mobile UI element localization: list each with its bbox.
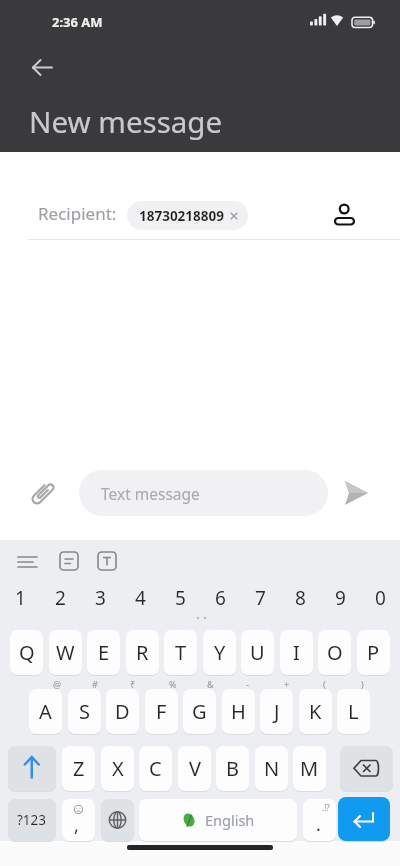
staticText: H xyxy=(231,698,246,725)
staticText: Recipient: xyxy=(38,202,117,225)
button[interactable]: A xyxy=(29,689,62,734)
staticText: G xyxy=(192,698,207,725)
button[interactable]: S xyxy=(68,689,101,734)
button[interactable]: 4 xyxy=(120,585,160,609)
button[interactable] xyxy=(101,799,134,841)
staticText: D xyxy=(115,698,130,725)
button[interactable]: , xyxy=(62,799,95,841)
button[interactable]: Z xyxy=(62,746,95,791)
staticText: X xyxy=(112,755,124,782)
staticText: ?123 xyxy=(17,811,47,829)
staticText: New message xyxy=(29,101,223,141)
staticText: 2:36 AM xyxy=(52,13,103,31)
staticText: 4 xyxy=(135,585,146,609)
staticText: % xyxy=(169,678,177,690)
button[interactable]: Text message xyxy=(79,470,328,516)
button[interactable]: 18730218809 xyxy=(127,201,248,230)
button[interactable]: P xyxy=(357,630,390,675)
staticText: L xyxy=(348,698,359,725)
staticText: 2 xyxy=(55,585,66,609)
button[interactable]: K xyxy=(299,689,332,734)
staticText: , xyxy=(74,813,79,838)
staticText: - xyxy=(246,678,249,690)
staticText: R xyxy=(136,639,149,666)
button[interactable] xyxy=(342,477,372,509)
button[interactable]: W xyxy=(49,630,82,675)
button[interactable]: B xyxy=(216,746,249,791)
button[interactable]: 7 xyxy=(240,585,280,609)
staticText: ( xyxy=(323,678,326,690)
button[interactable]: 9 xyxy=(320,585,360,609)
button[interactable]: U xyxy=(241,630,274,675)
staticText: Text message xyxy=(101,483,200,504)
staticText: 3 xyxy=(95,585,106,609)
staticText: + xyxy=(284,678,290,690)
staticText: C xyxy=(149,755,162,782)
button[interactable]: X xyxy=(101,746,134,791)
button[interactable] xyxy=(331,200,361,230)
button[interactable] xyxy=(28,478,58,514)
staticText: E xyxy=(98,639,110,666)
button[interactable] xyxy=(340,746,393,791)
button[interactable] xyxy=(338,797,390,841)
staticText: U xyxy=(250,639,265,666)
button[interactable] xyxy=(28,53,58,81)
staticText: W xyxy=(56,639,75,666)
staticText: J xyxy=(274,698,280,725)
button[interactable]: C xyxy=(139,746,172,791)
button[interactable]: J xyxy=(260,689,293,734)
button[interactable]: 0 xyxy=(360,585,400,609)
button[interactable] xyxy=(56,548,82,574)
button[interactable]: 1 xyxy=(0,585,40,609)
button[interactable]: Y xyxy=(203,630,236,675)
staticText: 6 xyxy=(215,585,226,609)
staticText: . xyxy=(316,812,321,837)
staticText: 0 xyxy=(375,585,386,609)
staticText: P xyxy=(367,639,380,666)
staticText: 1 xyxy=(15,585,26,609)
button[interactable]: R xyxy=(126,630,159,675)
button[interactable]: English xyxy=(139,799,297,841)
button[interactable]: Q xyxy=(10,630,43,675)
staticText: .!? xyxy=(322,802,330,813)
button[interactable]: T xyxy=(164,630,197,675)
button[interactable]: F xyxy=(145,689,178,734)
staticText: F xyxy=(156,698,167,725)
staticText: 8 xyxy=(295,585,306,609)
staticText: Q xyxy=(19,639,35,666)
button[interactable]: .!? xyxy=(303,799,336,841)
staticText: ) xyxy=(361,678,364,690)
button[interactable]: O xyxy=(318,630,351,675)
staticText: N xyxy=(264,755,280,782)
staticText: ₹ xyxy=(130,678,136,690)
button[interactable] xyxy=(94,548,120,574)
button[interactable]: G xyxy=(183,689,216,734)
staticText: Z xyxy=(73,755,85,782)
staticText: @ xyxy=(53,678,62,690)
staticText: S xyxy=(79,698,90,725)
button[interactable]: 6 xyxy=(200,585,240,609)
button[interactable]: D xyxy=(106,689,139,734)
staticText: English xyxy=(205,810,255,830)
button[interactable]: L xyxy=(337,689,370,734)
button[interactable]: H xyxy=(222,689,255,734)
staticText: O xyxy=(327,639,343,666)
button[interactable]: 3 xyxy=(80,585,120,609)
button[interactable] xyxy=(8,746,56,791)
button[interactable]: 8 xyxy=(280,585,320,609)
button[interactable]: ?123 xyxy=(8,799,56,841)
staticText: K xyxy=(309,698,322,725)
button[interactable]: N xyxy=(255,746,288,791)
button[interactable] xyxy=(14,548,42,574)
button[interactable]: 5 xyxy=(160,585,200,609)
button[interactable]: 2 xyxy=(40,585,80,609)
staticText: V xyxy=(189,755,201,782)
staticText: Y xyxy=(214,639,226,666)
button[interactable]: M xyxy=(293,746,326,791)
button[interactable]: V xyxy=(178,746,211,791)
button[interactable]: E xyxy=(87,630,120,675)
button[interactable]: I xyxy=(280,630,313,675)
staticText: I xyxy=(293,639,300,666)
staticText: 18730218809 xyxy=(139,207,224,225)
staticText: A xyxy=(39,698,52,725)
